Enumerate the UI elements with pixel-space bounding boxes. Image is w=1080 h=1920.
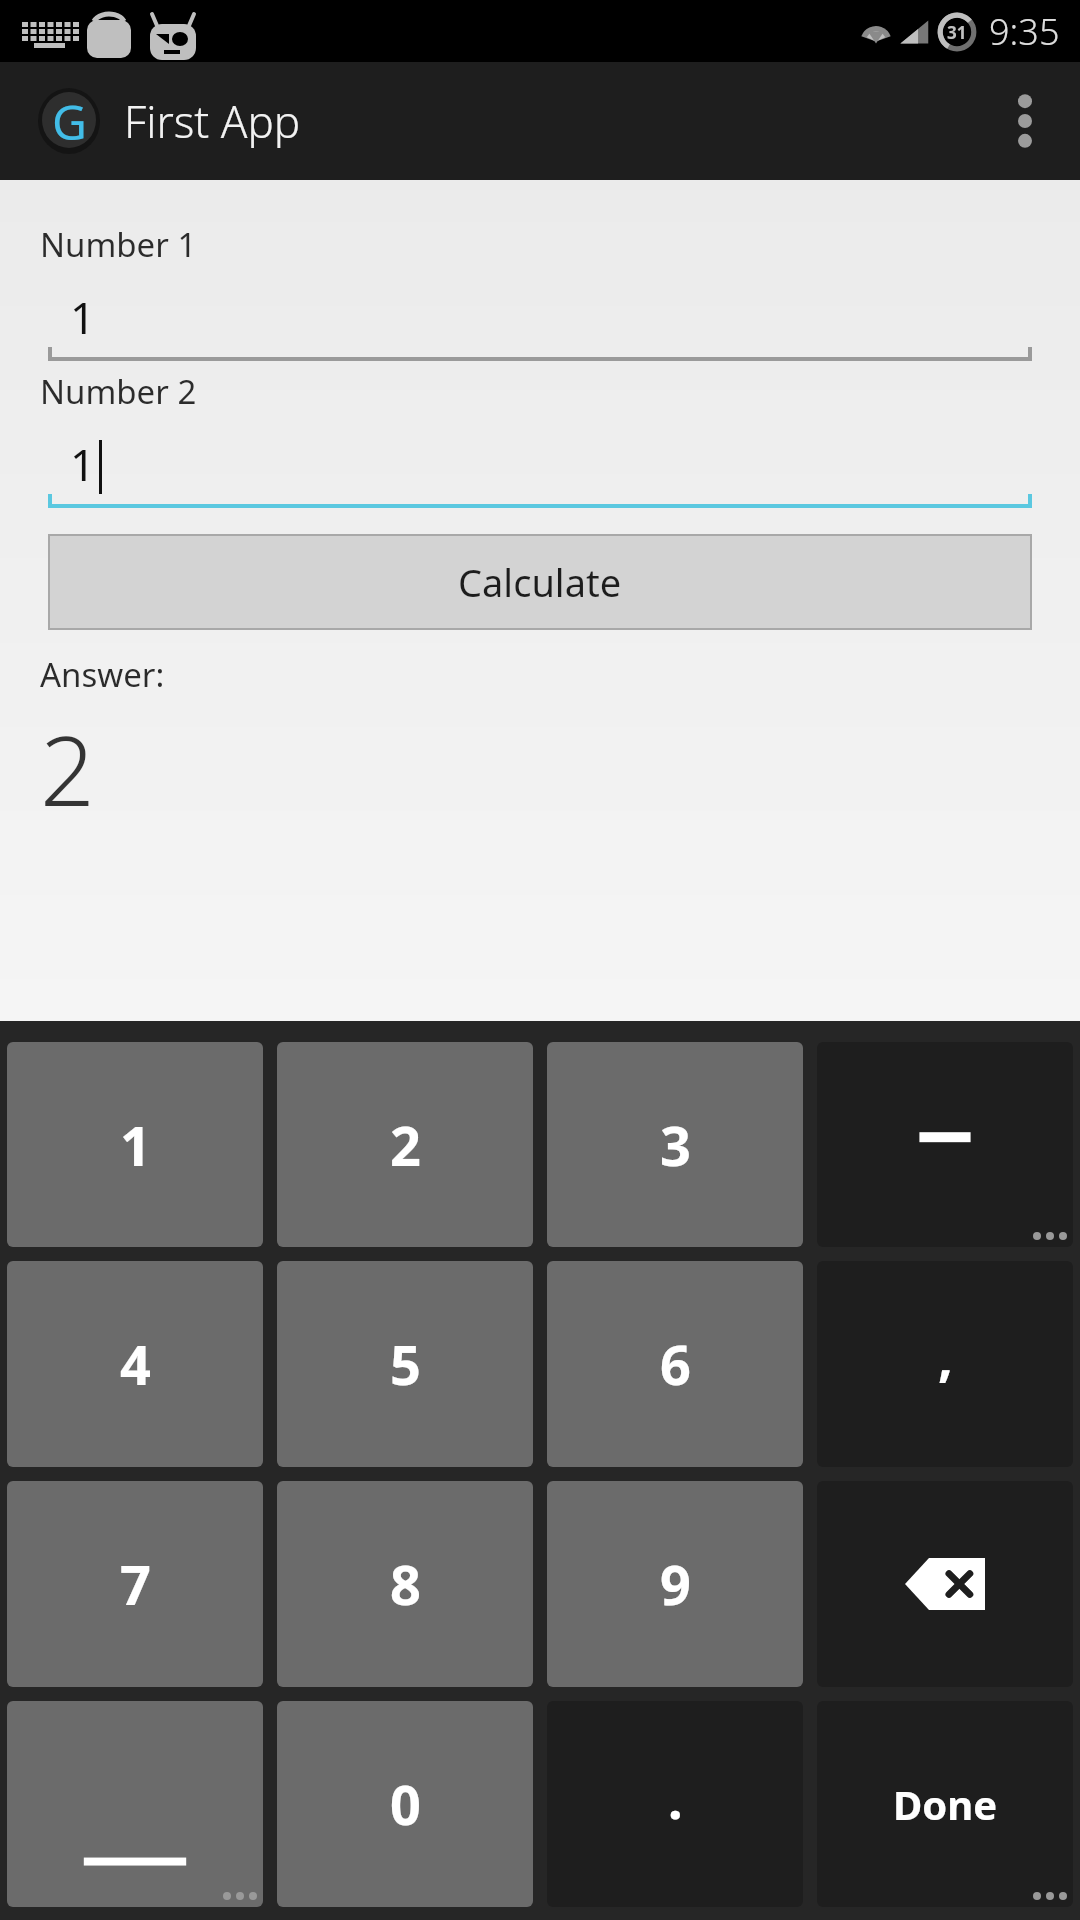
staticText: Number 1 <box>40 222 197 267</box>
staticText: 7 <box>120 1547 151 1621</box>
staticText: G <box>52 89 87 154</box>
staticText: 1 <box>70 434 96 494</box>
button[interactable]: Backspace <box>817 1481 1073 1687</box>
button[interactable]: 3 <box>547 1042 803 1247</box>
button[interactable]: 4 <box>7 1261 263 1467</box>
staticText: 0 <box>390 1767 421 1841</box>
staticText: 2 <box>390 1108 421 1182</box>
staticText: Number 2 <box>40 369 197 414</box>
button[interactable]: 6 <box>547 1261 803 1467</box>
button[interactable]: . <box>547 1701 803 1907</box>
button[interactable]: Done <box>817 1701 1073 1907</box>
button[interactable]: Calculate <box>48 534 1032 630</box>
staticText: 9:35 <box>989 7 1060 56</box>
staticText: 8 <box>390 1547 421 1621</box>
button[interactable]: , <box>817 1261 1073 1467</box>
staticText: First App <box>124 91 301 151</box>
staticText: 5 <box>390 1327 421 1401</box>
staticText: Done <box>893 1777 998 1831</box>
button[interactable] <box>817 1042 1073 1247</box>
staticText: 9 <box>660 1547 691 1621</box>
staticText: 2 <box>40 703 95 834</box>
button[interactable]: 7 <box>7 1481 263 1687</box>
button[interactable]: 2 <box>277 1042 533 1247</box>
staticText: 1 <box>120 1108 151 1182</box>
staticText: , <box>938 1320 953 1391</box>
staticText: Calculate <box>458 556 622 608</box>
staticText: 1 <box>70 287 96 347</box>
button[interactable]: 1 <box>7 1042 263 1247</box>
button[interactable]: More options <box>970 62 1080 180</box>
staticText: . <box>668 1763 683 1834</box>
button[interactable]: 0 <box>277 1701 533 1907</box>
button[interactable]: 9 <box>547 1481 803 1687</box>
staticText: 4 <box>120 1327 151 1401</box>
staticText: 3 <box>660 1108 691 1182</box>
button[interactable]: 5 <box>277 1261 533 1467</box>
button[interactable]: 8 <box>277 1481 533 1687</box>
staticText: Answer: <box>40 652 165 697</box>
staticText: 31 <box>947 21 967 44</box>
button[interactable]: 1 <box>48 283 1032 361</box>
button[interactable]: 1 <box>48 430 1032 508</box>
button[interactable]: Space <box>7 1701 263 1907</box>
staticText: 6 <box>660 1327 691 1401</box>
